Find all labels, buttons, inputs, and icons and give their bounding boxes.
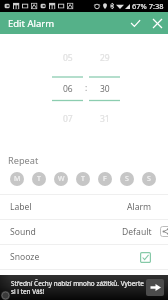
staticText: T — [81, 174, 85, 184]
staticText: 67% 7:38 — [132, 1, 164, 11]
staticText: Label — [10, 201, 32, 213]
staticText: S — [125, 174, 129, 184]
button[interactable]: M — [10, 172, 24, 186]
button[interactable]: T — [32, 172, 46, 186]
button[interactable]: Save alarm — [124, 12, 146, 34]
button[interactable]: T — [76, 172, 90, 186]
button[interactable]: Choose ringtone — [160, 226, 168, 237]
button[interactable]: Cancel — [146, 12, 168, 34]
staticText: W — [58, 174, 65, 184]
staticText: S — [147, 174, 151, 184]
staticText: 31 — [100, 113, 110, 125]
button[interactable]: F — [98, 172, 112, 186]
staticText: Střední Čechy nabízí mnoho zážitků. Vybe… — [11, 279, 145, 296]
staticText: Snooze — [10, 251, 40, 263]
button[interactable]: S — [120, 172, 134, 186]
button[interactable]: Open advertisement — [146, 279, 164, 296]
staticText: T — [37, 174, 41, 184]
button[interactable]: Střední Čechy nabízí mnoho zážitků. Vybe… — [0, 275, 168, 300]
button[interactable]: S — [142, 172, 156, 186]
staticText: 05 — [63, 52, 73, 64]
staticText: 29 — [100, 52, 110, 64]
staticText: M — [14, 174, 21, 184]
staticText: F — [103, 174, 107, 184]
staticText: Repeat — [8, 154, 39, 167]
staticText: 30 — [100, 83, 110, 95]
staticText: Sound — [10, 226, 36, 238]
button[interactable]: Sound — [0, 219, 168, 244]
staticText: Default — [122, 226, 152, 238]
staticText: Edit Alarm — [8, 17, 55, 30]
staticText: 07 — [63, 113, 73, 125]
button[interactable]: W — [54, 172, 68, 186]
staticText: Alarm — [127, 201, 152, 213]
staticText: 06 — [63, 83, 73, 95]
button[interactable]: Snooze enabled — [140, 252, 151, 263]
staticText: : — [85, 82, 88, 94]
button[interactable]: Snooze — [0, 244, 168, 270]
button[interactable]: Label — [0, 194, 168, 219]
